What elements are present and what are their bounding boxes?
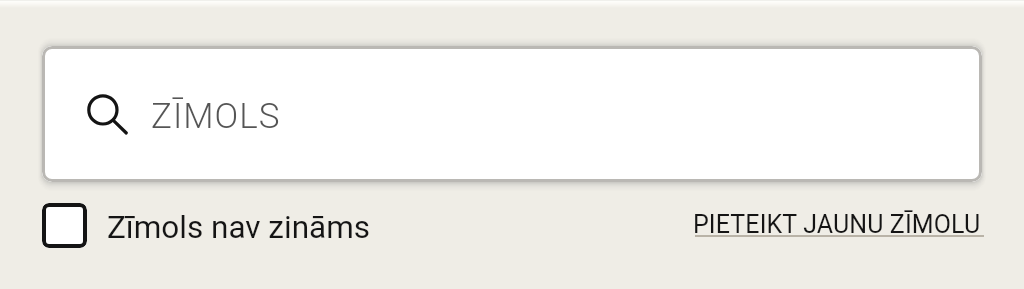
staticText: PIETEIKT JAUNU ZĪMOLU <box>693 210 981 239</box>
button[interactable]: Brand search field <box>42 46 982 182</box>
staticText: ZĪMOLS <box>151 96 281 137</box>
button[interactable]: Zīmols nav zināms <box>36 198 376 254</box>
button[interactable]: PIETEIKT JAUNU ZĪMOLU <box>684 202 988 248</box>
staticText: Zīmols nav zināms <box>107 209 371 246</box>
